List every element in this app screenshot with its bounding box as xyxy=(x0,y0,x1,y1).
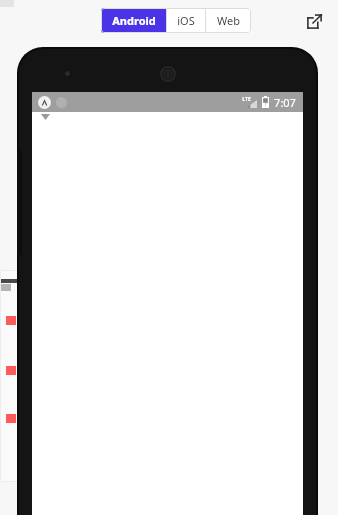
button[interactable]: Android xyxy=(101,8,166,33)
button[interactable]: Open in new window xyxy=(300,7,328,35)
staticText: Android xyxy=(112,13,156,28)
staticText: Web xyxy=(217,13,240,28)
button[interactable]: iOS xyxy=(167,8,205,33)
staticText: 7:07 xyxy=(274,95,296,110)
button[interactable]: Web xyxy=(206,8,251,33)
staticText: LTE xyxy=(242,96,251,103)
staticText: iOS xyxy=(177,13,195,28)
